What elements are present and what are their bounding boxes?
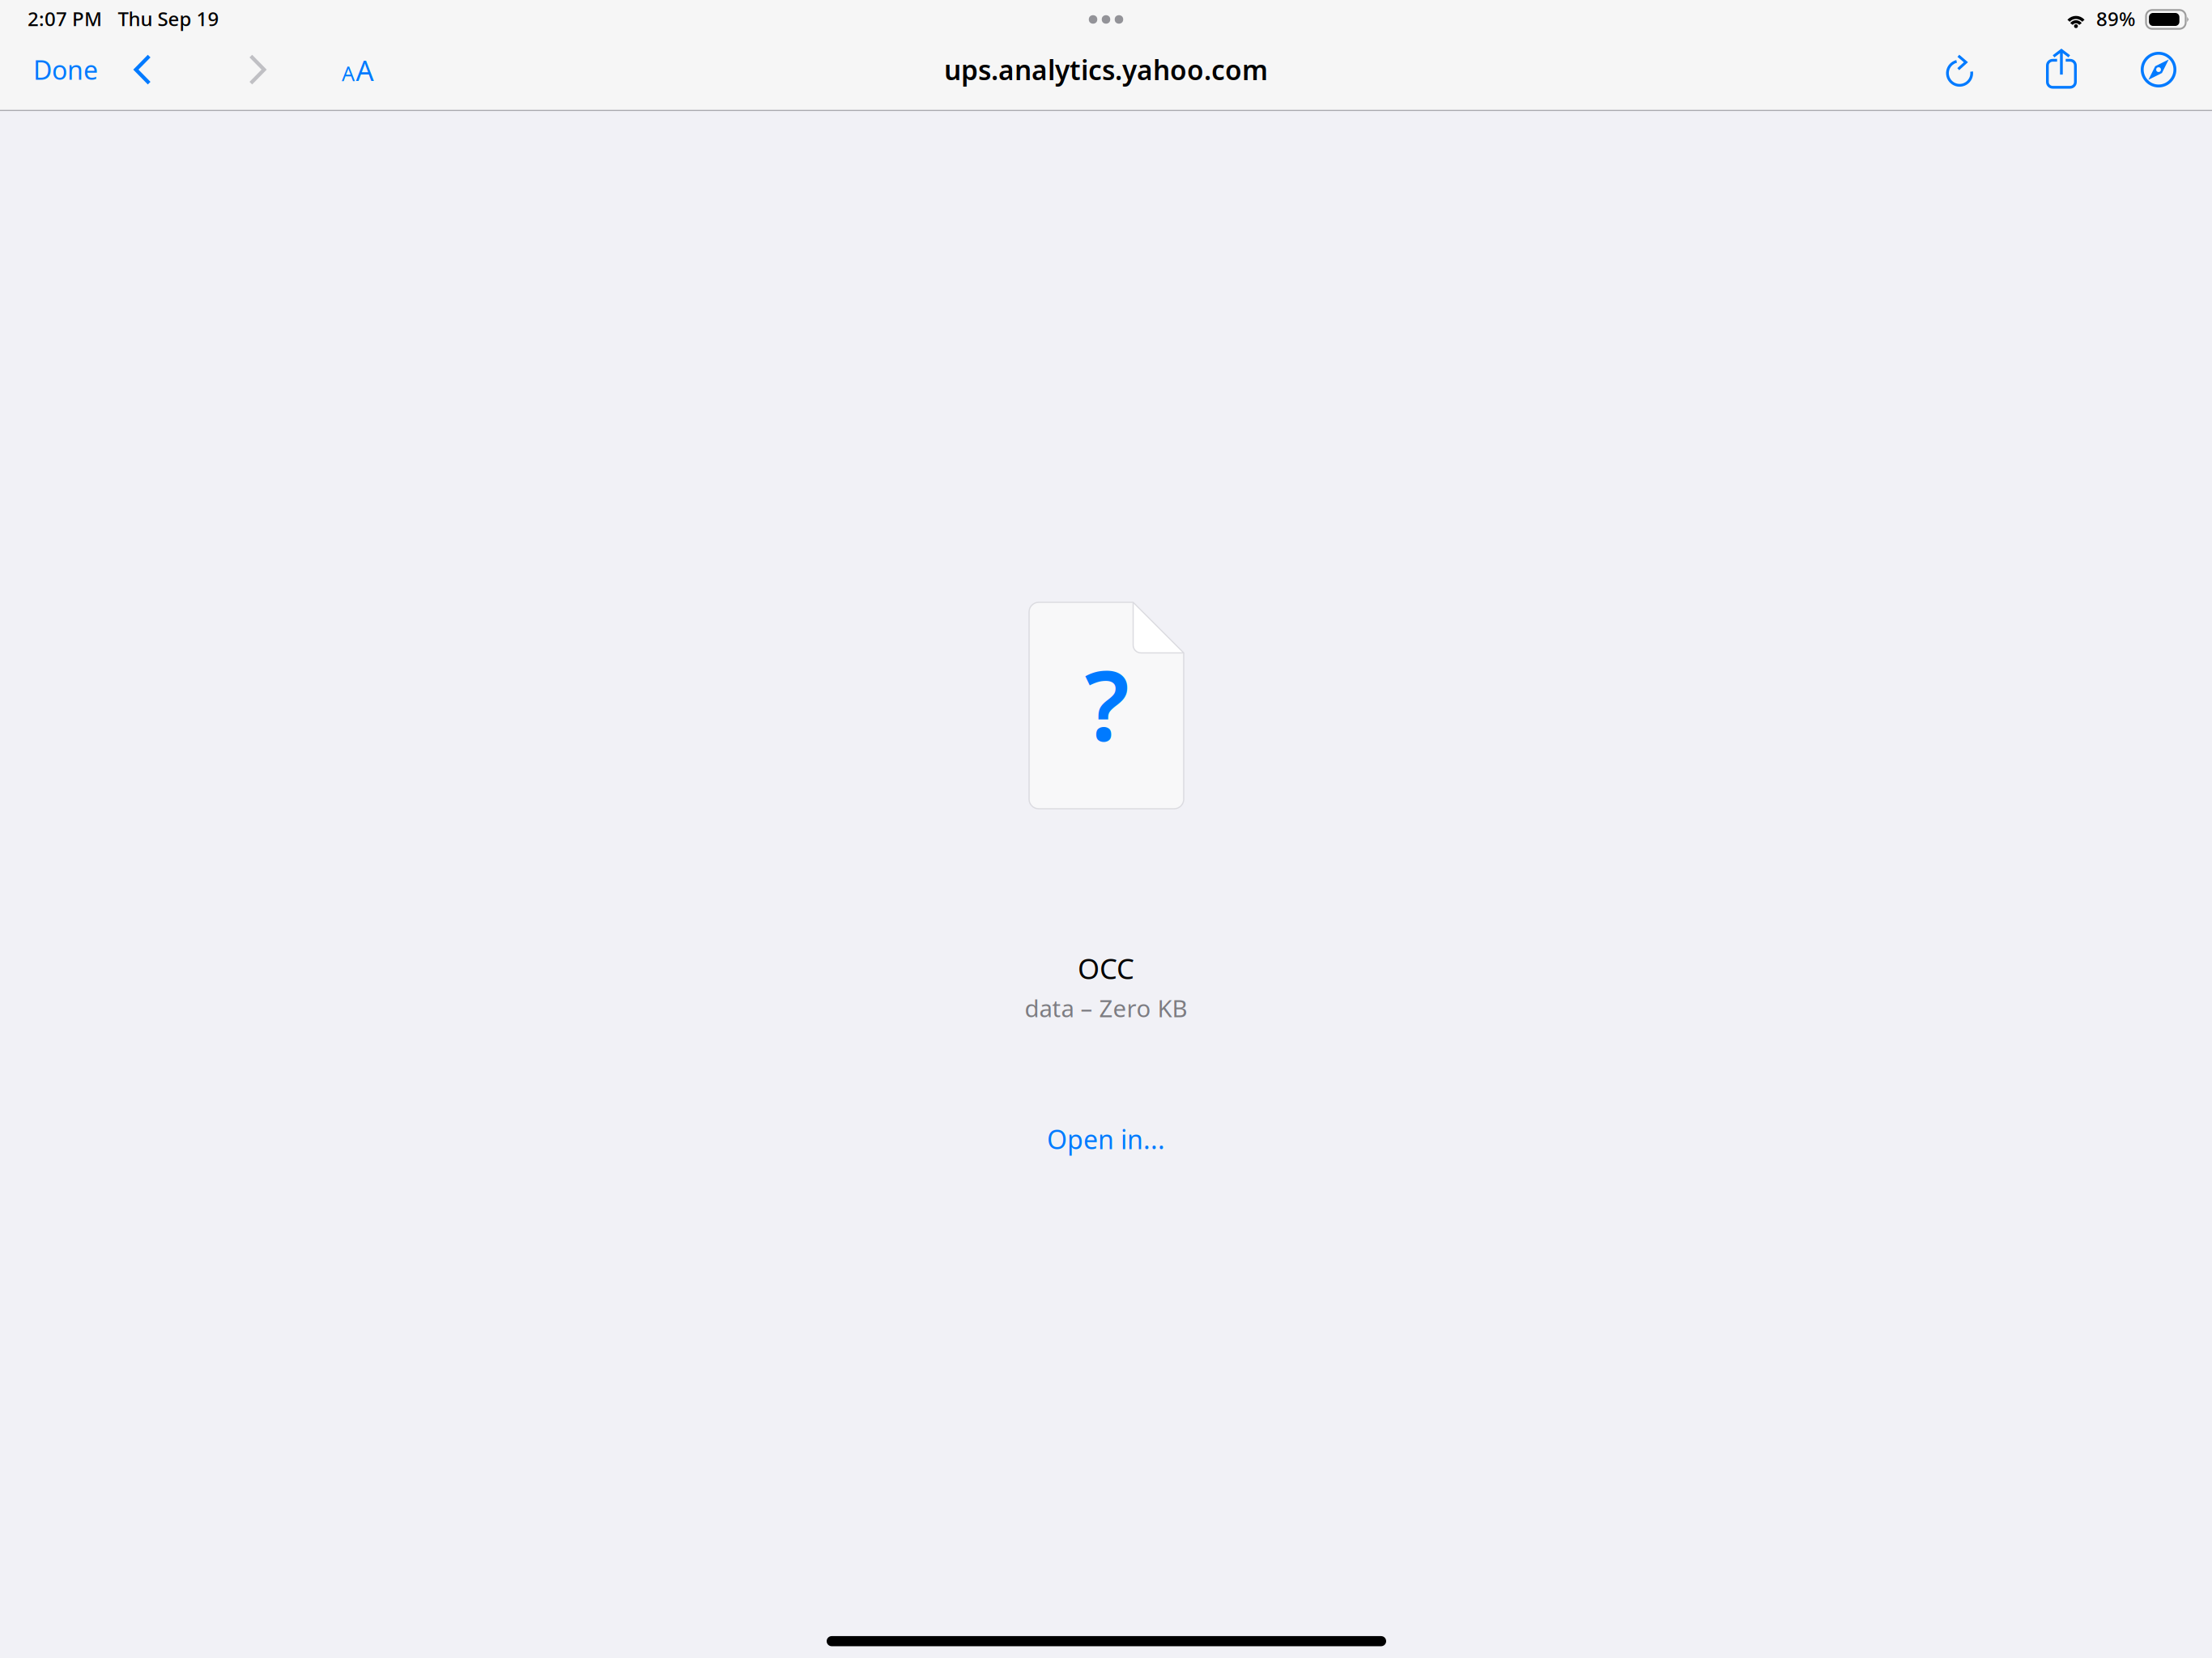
staticText: Thu Sep 19 [118, 6, 219, 32]
staticText: data – Zero KB [1025, 992, 1187, 1024]
button[interactable]: Open in... [1017, 1117, 1195, 1161]
staticText: A [342, 60, 355, 87]
staticText: 89% [2096, 6, 2135, 32]
button[interactable]: Reload [1936, 45, 1987, 96]
button[interactable]: Forward [232, 45, 283, 95]
staticText: ? [1085, 638, 1129, 767]
staticText: A [356, 51, 374, 89]
staticText: Open in... [1047, 1122, 1165, 1156]
staticText: OCC [1078, 950, 1134, 987]
staticText: Done [33, 52, 98, 87]
staticText: ups.analytics.yahoo.com [944, 52, 1268, 88]
button[interactable]: Text size [338, 45, 388, 95]
button[interactable]: Done [21, 45, 110, 95]
button[interactable]: Share [2036, 44, 2087, 94]
button[interactable]: Open in Safari [2133, 45, 2184, 95]
button[interactable]: Back [117, 45, 168, 95]
staticText: 2:07 PM [28, 6, 102, 32]
